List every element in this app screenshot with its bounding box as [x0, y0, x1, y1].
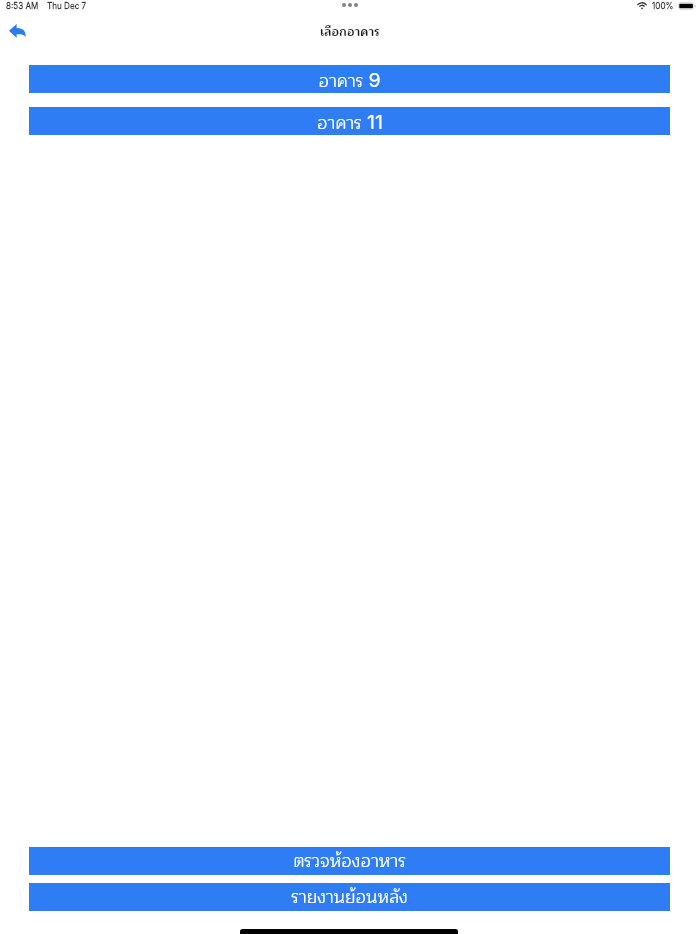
button[interactable]: รายงานย้อนหลัง: [29, 883, 670, 911]
staticText: 100%: [652, 1, 674, 11]
button[interactable]: Back: [5, 22, 29, 40]
button[interactable]: อาคาร 11: [29, 107, 670, 135]
button[interactable]: อาคาร 9: [29, 65, 670, 93]
staticText: เลือกอาคาร: [320, 22, 380, 42]
staticText: 8:53 AM: [6, 1, 39, 11]
staticText: Thu Dec 7: [47, 1, 87, 11]
staticText: อาคาร 11: [317, 109, 383, 137]
button[interactable]: ตรวจห้องอาหาร: [29, 847, 670, 875]
staticText: อาคาร 9: [318, 67, 381, 95]
staticText: รายงานย้อนหลัง: [291, 883, 408, 911]
staticText: ตรวจห้องอาหาร: [293, 847, 406, 875]
